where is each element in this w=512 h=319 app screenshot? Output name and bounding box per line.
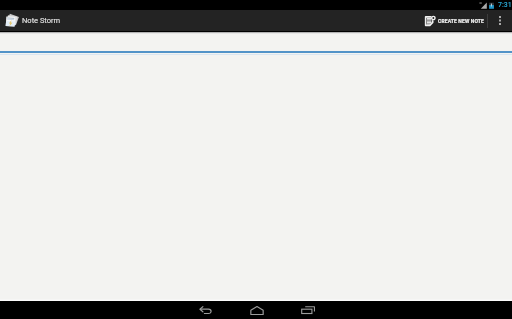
button[interactable]: CREATE NEW NOTE [416, 10, 487, 31]
button[interactable]: Back [180, 301, 231, 319]
button[interactable]: Home [231, 301, 282, 319]
staticText: Note Storm [22, 16, 61, 25]
button[interactable]: Note Storm [0, 10, 416, 31]
button[interactable]: Recent apps [282, 301, 333, 319]
button[interactable]: More options [488, 10, 512, 31]
staticText: 7:31 [498, 1, 512, 9]
staticText: CREATE NEW NOTE [438, 18, 484, 24]
